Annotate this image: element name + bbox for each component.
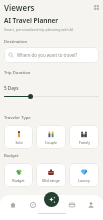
button[interactable]: Plan trip with AI <box>44 192 59 207</box>
staticText: Traveler Type <box>4 115 31 121</box>
button[interactable]: Luxury <box>69 163 99 187</box>
button[interactable]: Trip duration slider <box>4 93 99 99</box>
staticText: AI Travel Planner <box>4 16 59 25</box>
button[interactable]: Budget <box>4 163 33 187</box>
staticText: Destination <box>4 39 28 45</box>
staticText: Smart, personalized trip planning with A… <box>4 27 74 32</box>
button[interactable]: Solo <box>4 125 33 149</box>
staticText: Viewers <box>4 2 35 13</box>
staticText: Mid-range <box>42 178 60 183</box>
button[interactable]: Explore <box>23 196 43 213</box>
button[interactable]: Family <box>69 125 99 149</box>
staticText: Trip Duration <box>4 70 31 76</box>
staticText: Where do you want to travel? <box>17 52 78 58</box>
button[interactable]: Profile <box>81 196 100 213</box>
staticText: Family <box>79 140 90 145</box>
button[interactable]: Trips <box>62 196 81 213</box>
staticText: Budget <box>12 178 25 183</box>
staticText: Solo <box>15 140 23 145</box>
button[interactable]: Home <box>3 196 23 213</box>
button[interactable]: Couple <box>36 125 66 149</box>
staticText: 5 Days <box>4 85 19 91</box>
staticText: Budget <box>4 153 19 159</box>
staticText: Luxury <box>78 178 90 183</box>
staticText: Couple <box>45 140 57 145</box>
button[interactable]: Where do you want to travel? <box>4 47 99 63</box>
button[interactable]: Saved trips <box>93 4 99 10</box>
button[interactable]: Mid-range <box>36 163 66 187</box>
